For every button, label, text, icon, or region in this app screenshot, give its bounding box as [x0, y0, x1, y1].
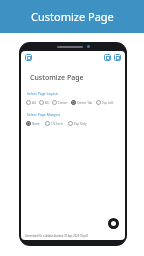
- staticText: 1/2 Inch: [51, 122, 63, 126]
- staticText: Generated file is Adobe Acrobat 07-Apr-2…: [25, 234, 88, 238]
- button[interactable]: Center: [52, 100, 68, 105]
- staticText: Select Page Layout: [27, 91, 58, 96]
- button[interactable]: Top Left: [96, 100, 114, 105]
- staticText: Customize Page: [31, 9, 114, 24]
- button[interactable]: Top Only: [68, 121, 87, 126]
- staticText: A5: [45, 101, 49, 105]
- button[interactable]: 1/2 Inch: [45, 121, 63, 126]
- button[interactable]: Center Tab: [71, 100, 93, 105]
- staticText: None: [32, 122, 40, 126]
- staticText: Center Tab: [77, 101, 93, 105]
- staticText: Top Only: [74, 122, 87, 126]
- button[interactable]: Back: [25, 54, 32, 61]
- button[interactable]: Preview: [114, 54, 121, 61]
- button[interactable]: A5: [39, 100, 49, 105]
- staticText: Customize Page: [30, 73, 84, 83]
- button[interactable]: None: [26, 121, 40, 126]
- staticText: Center: [58, 101, 68, 105]
- staticText: Top Left: [102, 101, 114, 105]
- button[interactable]: Save: [104, 54, 111, 61]
- button[interactable]: Add: [108, 218, 119, 229]
- button[interactable]: A4: [26, 100, 36, 105]
- staticText: A4: [32, 101, 36, 105]
- staticText: Select Page Margins: [27, 112, 61, 117]
